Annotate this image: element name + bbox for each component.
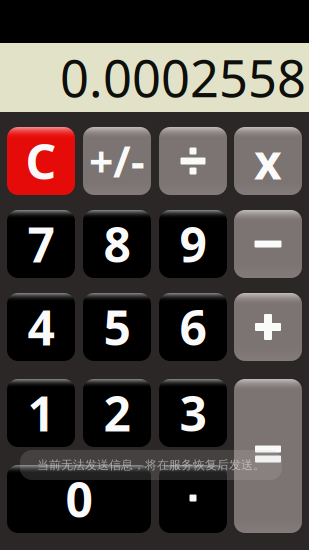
staticText: +/- xyxy=(89,133,145,189)
staticText: 2 xyxy=(103,381,130,445)
button[interactable]: 2 xyxy=(83,379,151,447)
staticText: 5 xyxy=(103,295,130,359)
button[interactable]: Plus xyxy=(234,293,302,361)
button[interactable]: 9 xyxy=(159,210,227,278)
button[interactable]: 7 xyxy=(7,210,75,278)
button[interactable]: 4 xyxy=(7,293,75,361)
staticText: 3 xyxy=(179,381,206,445)
button[interactable]: 5 xyxy=(83,293,151,361)
button[interactable]: Clear xyxy=(7,127,75,195)
staticText: 7 xyxy=(27,212,54,276)
staticText: 6 xyxy=(179,295,206,359)
button[interactable]: Equals xyxy=(234,379,302,533)
staticText: 0 xyxy=(65,467,92,531)
button[interactable]: Plus minus xyxy=(83,127,151,195)
button[interactable]: Divide xyxy=(159,127,227,195)
staticText: 8 xyxy=(103,212,130,276)
button[interactable]: Decimal point xyxy=(159,465,227,533)
button[interactable]: Multiply xyxy=(234,127,302,195)
staticText: 1 xyxy=(27,381,54,445)
staticText: 0.0002558 xyxy=(60,44,306,111)
button[interactable]: 1 xyxy=(7,379,75,447)
staticText: 当前无法发送信息，将在服务恢复后发送。 xyxy=(37,458,265,472)
staticText: 4 xyxy=(27,295,54,359)
staticText: x xyxy=(254,129,282,193)
button[interactable]: 0 xyxy=(7,465,151,533)
button[interactable]: 3 xyxy=(159,379,227,447)
button[interactable]: 6 xyxy=(159,293,227,361)
button[interactable]: Minus xyxy=(234,210,302,278)
staticText: C xyxy=(25,129,56,193)
staticText: 9 xyxy=(179,212,206,276)
button[interactable]: 8 xyxy=(83,210,151,278)
